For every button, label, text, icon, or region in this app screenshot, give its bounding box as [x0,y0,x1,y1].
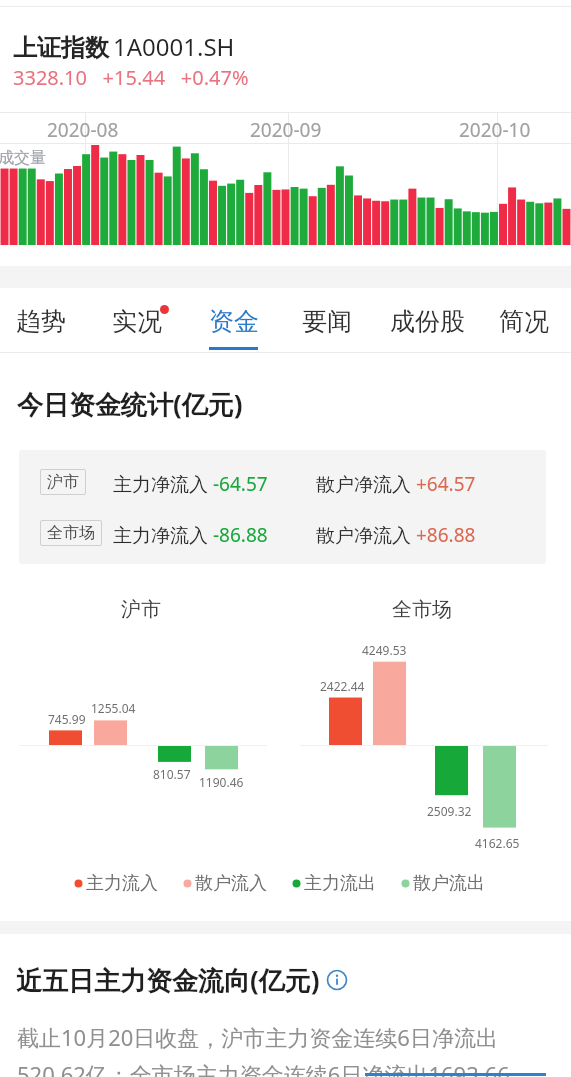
staticText: 散户流出 [413,872,485,895]
staticText: 要闻 [302,306,352,337]
staticText: -86.88 [213,522,268,548]
staticText: 810.57 [153,766,191,782]
staticText: 上证指数 [13,33,109,63]
staticText: 全市场 [47,523,95,543]
staticText: 今日资金统计(亿元) [17,386,243,422]
staticText: 1255.04 [91,700,136,716]
staticText: +64.57 [416,471,476,497]
button[interactable] [96,288,191,352]
staticText: 2509.32 [427,803,472,819]
staticText: 实况 [112,306,162,337]
staticText: 主力流出 [304,872,376,895]
staticText: 沪市 [47,472,79,492]
staticText: 4249.53 [362,642,407,658]
staticText: 趋势 [16,306,66,337]
button[interactable]: 沪市 [19,460,546,510]
staticText: 资金 [209,306,259,337]
staticText: 4162.65 [475,835,520,851]
staticText: 2020-09 [250,117,322,143]
staticText: 2020-08 [47,117,119,143]
staticText: 成交量 [0,148,46,168]
staticText: 截止10月20日收盘，沪市主力资金连续6日净流出 [17,1022,498,1052]
button[interactable] [381,288,476,352]
staticText: 全市场 [392,597,452,622]
staticText: 沪市 [121,597,161,622]
staticText: 成份股 [390,306,465,337]
staticText: 1190.46 [199,774,244,790]
button[interactable]: 全市场 [19,511,546,561]
staticText: 主力净流入 [113,471,213,497]
staticText: -64.57 [213,471,268,497]
staticText: 散户流入 [195,872,267,895]
staticText: 745.99 [48,711,86,727]
staticText: 主力净流入 [113,522,213,548]
button[interactable] [476,288,571,352]
staticText: 散户净流入 [316,471,416,497]
staticText: 主力流入 [86,872,158,895]
button[interactable] [0,288,96,352]
staticText: 2020-10 [459,117,531,143]
staticText: 简况 [499,306,549,337]
button[interactable]: 说明 [326,969,348,991]
staticText: 2422.44 [320,678,365,694]
staticText: 520.62亿；全市场主力资金连续6日净流出1693.66 [17,1059,510,1077]
button[interactable] [286,288,381,352]
staticText: 3328.10 +15.44 +0.47% [13,64,249,91]
button[interactable] [191,288,286,352]
staticText: 近五日主力资金流向(亿元) [16,962,320,998]
staticText: +86.88 [416,522,476,548]
staticText: 散户净流入 [316,522,416,548]
staticText: 1A0001.SH [113,30,235,63]
